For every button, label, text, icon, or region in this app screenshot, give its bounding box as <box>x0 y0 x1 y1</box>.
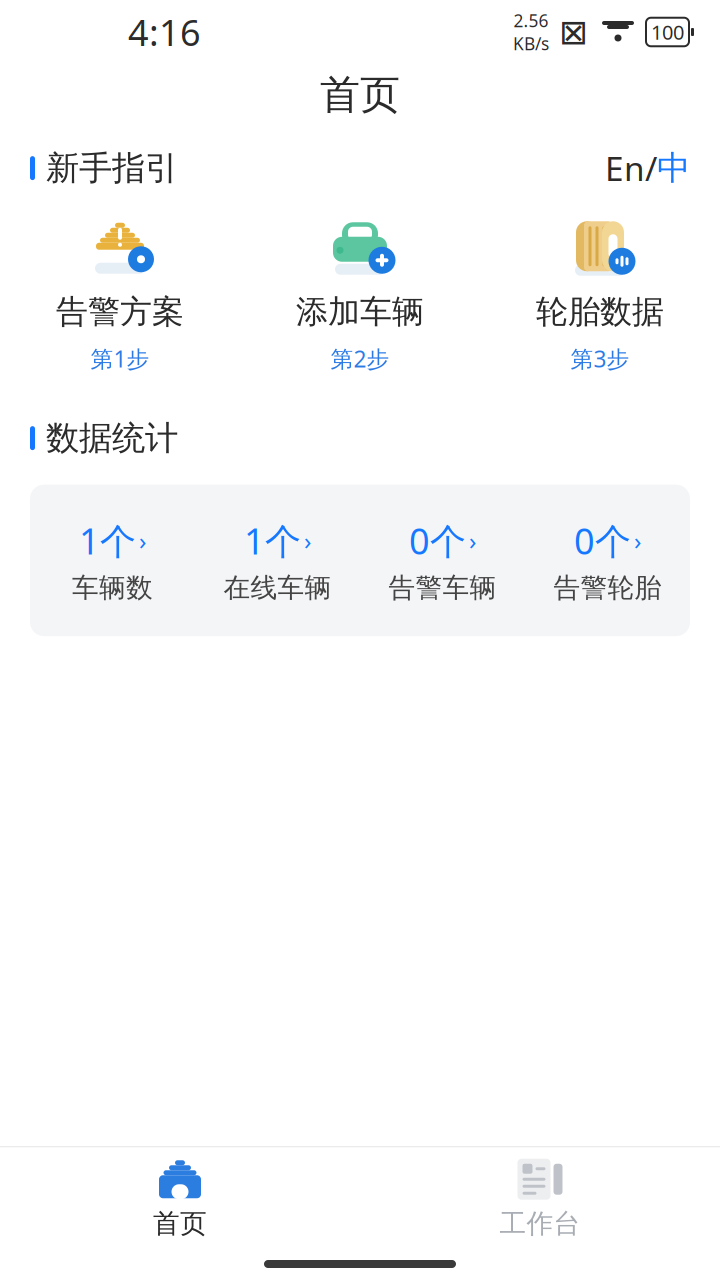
staticText: KB/s <box>513 32 549 55</box>
button[interactable]: 1个 <box>30 517 195 604</box>
staticText: 2.56 <box>513 9 548 32</box>
staticText: 第2步 <box>330 344 389 374</box>
staticText: 首页 <box>320 70 400 119</box>
staticText: 车辆数 <box>72 571 153 604</box>
staticText: 4:16 <box>128 8 201 56</box>
button[interactable]: 0个 <box>360 517 525 604</box>
button[interactable]: 添加车辆 <box>240 212 480 374</box>
staticText: 在线车辆 <box>223 571 331 604</box>
staticText: › <box>469 525 476 556</box>
button[interactable]: 0个 <box>525 517 690 604</box>
staticText: 告警方案 <box>56 292 184 332</box>
staticText: 新手指引 <box>46 148 178 189</box>
staticText: 数据统计 <box>46 418 178 459</box>
button[interactable]: En/ <box>605 146 690 190</box>
staticText: 1个 <box>79 517 136 564</box>
staticText: 添加车辆 <box>296 292 424 332</box>
staticText: 告警轮胎 <box>553 571 661 604</box>
staticText: 第3步 <box>570 344 629 374</box>
staticText: En/ <box>605 146 657 190</box>
staticText: 工作台 <box>499 1207 580 1240</box>
staticText: ⊠ <box>559 12 588 52</box>
staticText: 0个 <box>409 517 466 564</box>
staticText: 0个 <box>574 517 631 564</box>
button[interactable]: 首页 <box>0 1147 360 1246</box>
staticText: 中 <box>657 148 690 189</box>
staticText: › <box>139 525 146 556</box>
staticText: 1个 <box>244 517 301 564</box>
button[interactable]: 轮胎数据 <box>480 212 720 374</box>
staticText: 100 <box>651 19 684 45</box>
staticText: 第1步 <box>90 344 149 374</box>
staticText: › <box>634 525 641 556</box>
button[interactable]: 告警方案 <box>0 212 240 374</box>
button[interactable]: 工作台 <box>360 1147 720 1246</box>
staticText: 告警车辆 <box>388 571 496 604</box>
staticText: 首页 <box>153 1207 207 1240</box>
staticText: 轮胎数据 <box>536 292 664 332</box>
staticText: › <box>304 525 311 556</box>
button[interactable]: 1个 <box>195 517 360 604</box>
